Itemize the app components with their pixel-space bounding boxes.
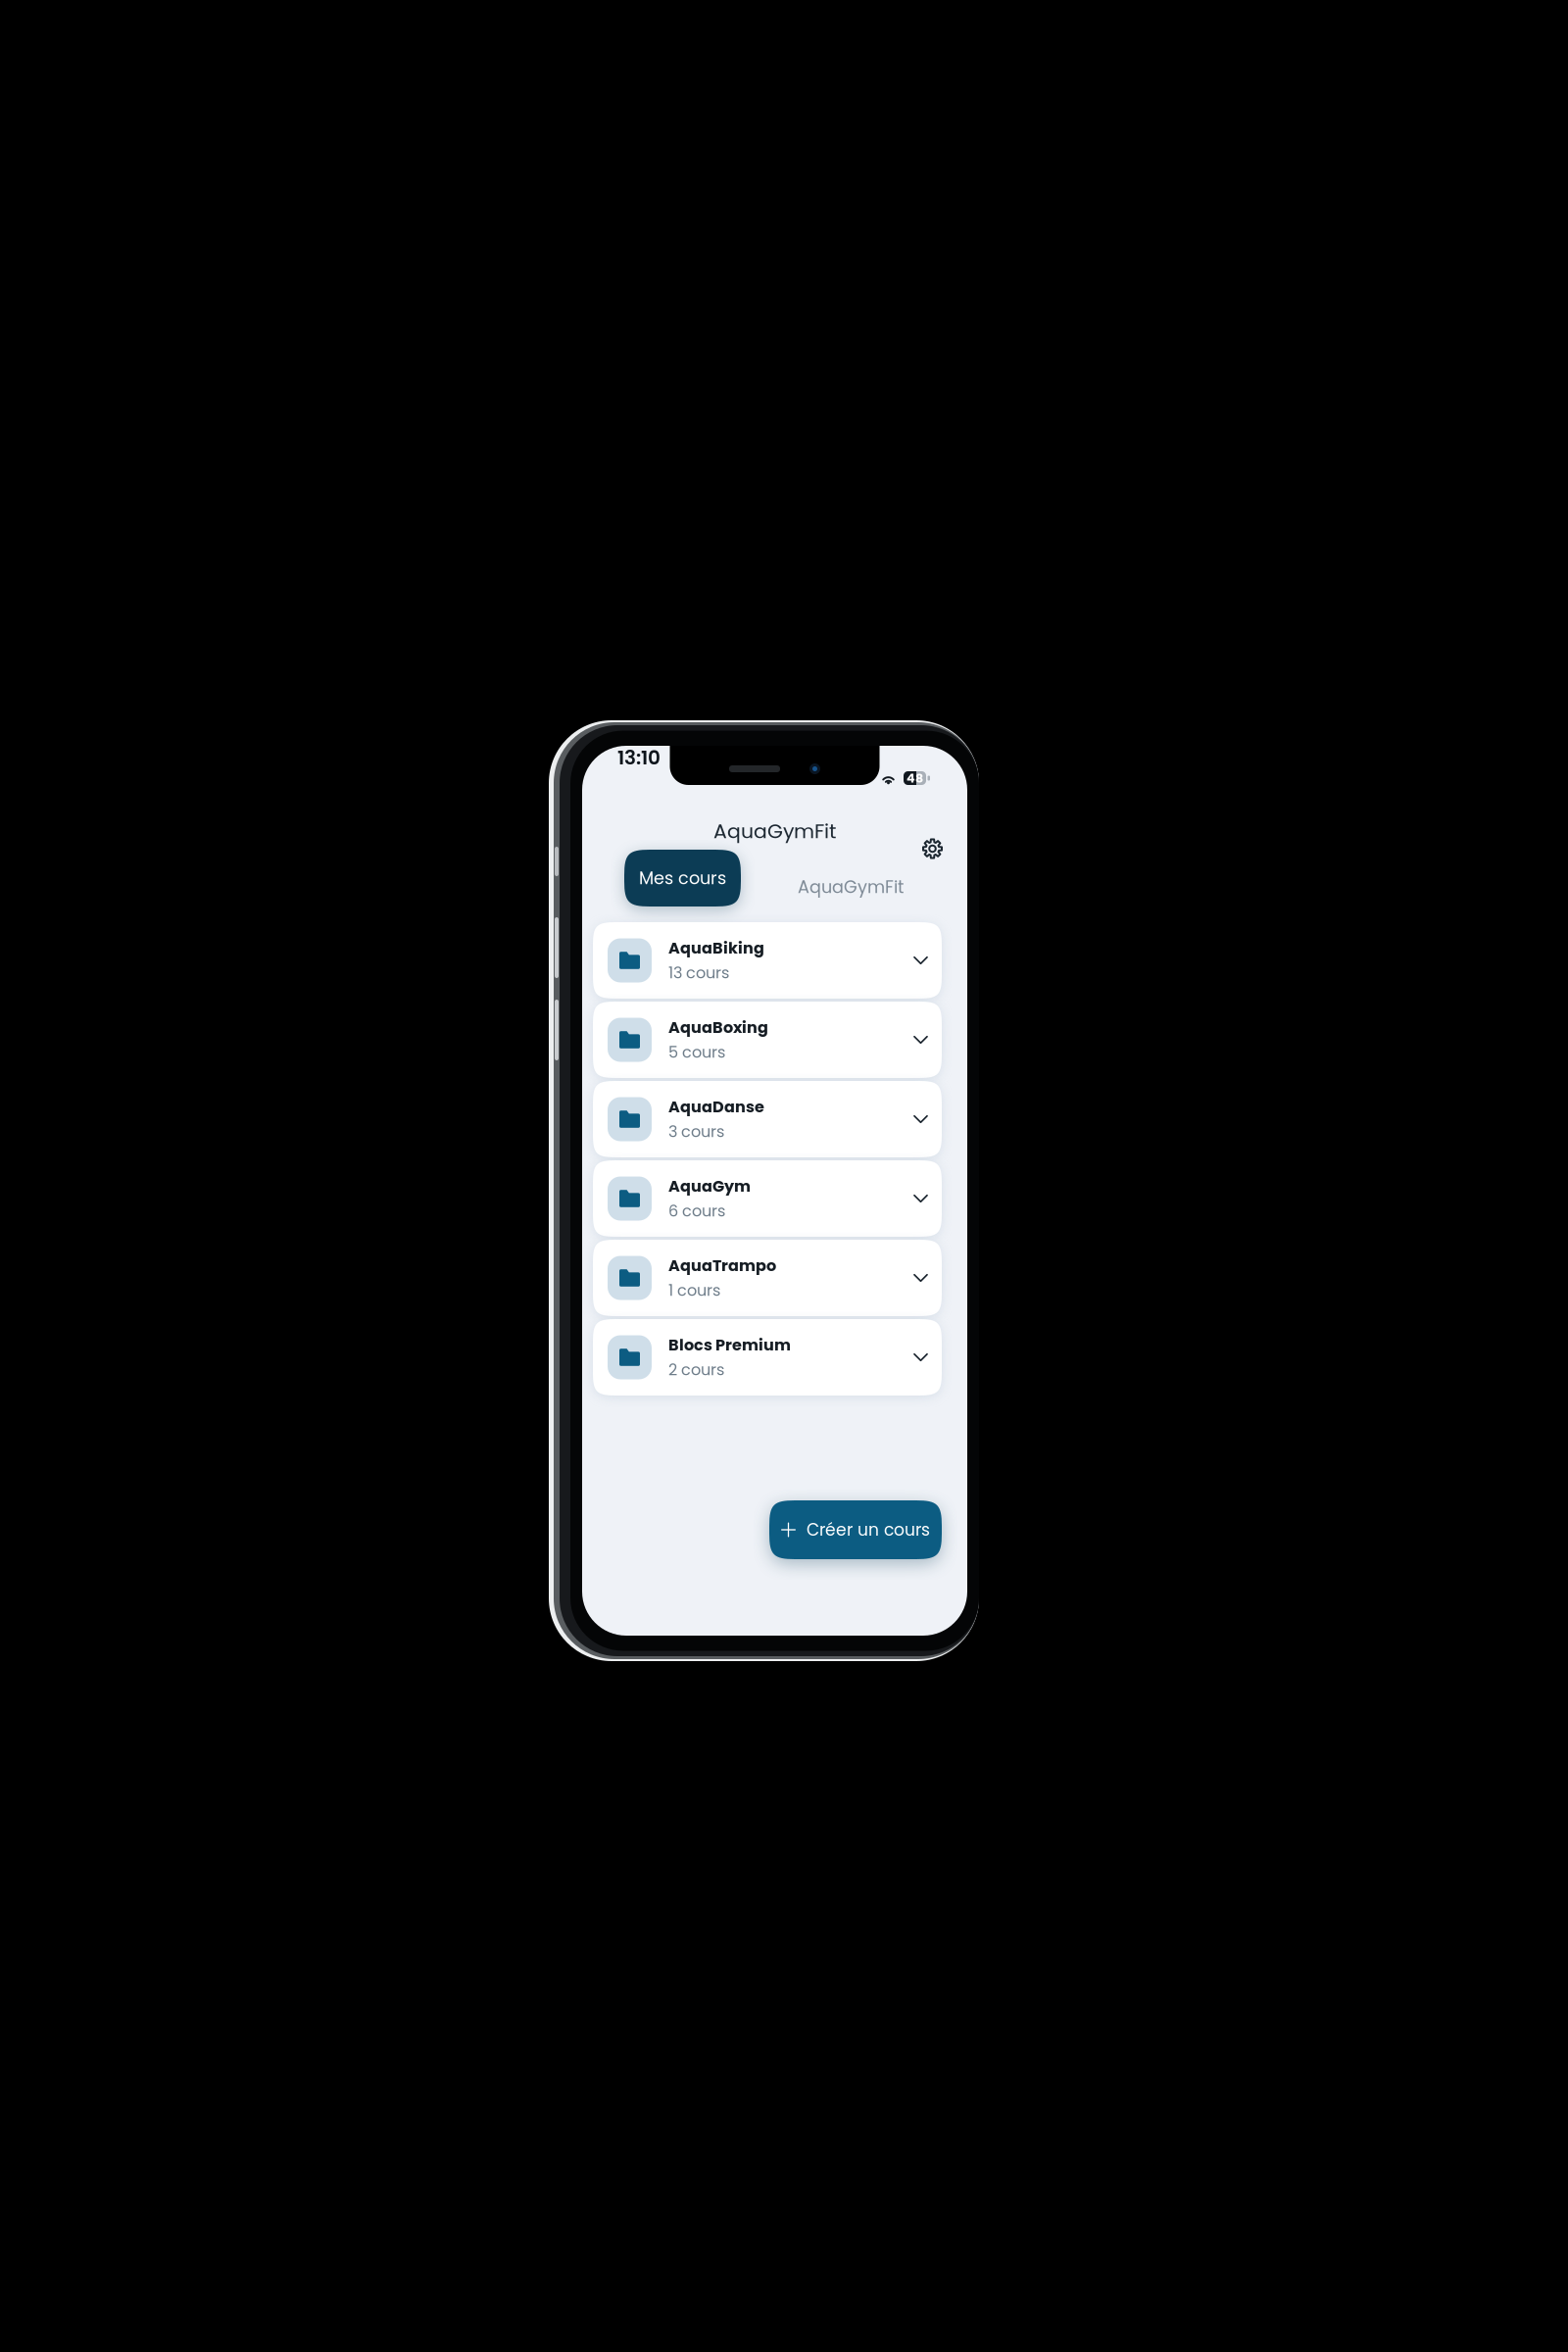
staticText: Mes cours (639, 866, 726, 890)
button[interactable]: Settings (922, 838, 943, 859)
staticText: AquaBiking (668, 937, 764, 959)
staticText: AquaTrampo (668, 1254, 776, 1276)
staticText: 5 cours (668, 1041, 725, 1063)
button[interactable]: AquaGymFit (784, 850, 917, 906)
staticText: AquaBoxing (668, 1016, 768, 1038)
staticText: Blocs Premium (668, 1334, 791, 1356)
staticText: 3 cours (668, 1121, 724, 1143)
staticText: AquaGymFit (798, 875, 904, 899)
staticText: 13 cours (668, 962, 729, 984)
staticText: AquaGymFit (713, 817, 836, 845)
staticText: 1 cours (668, 1279, 720, 1301)
button[interactable]: AquaDanse (593, 1081, 942, 1157)
button[interactable]: Blocs Premium (593, 1319, 942, 1396)
button[interactable]: Mes cours (624, 850, 741, 906)
button[interactable]: Créer un cours (769, 1500, 942, 1559)
staticText: AquaGym (668, 1175, 751, 1197)
staticText: AquaDanse (668, 1096, 764, 1118)
button[interactable]: AquaBoxing (593, 1002, 942, 1078)
staticText: 2 cours (668, 1359, 724, 1381)
staticText: 13:10 (617, 744, 661, 771)
staticText: 6 cours (668, 1200, 725, 1222)
staticText: 48 (906, 769, 923, 787)
button[interactable]: AquaTrampo (593, 1240, 942, 1316)
staticText: Créer un cours (807, 1518, 930, 1542)
button[interactable]: AquaBiking (593, 922, 942, 999)
button[interactable]: AquaGym (593, 1160, 942, 1237)
